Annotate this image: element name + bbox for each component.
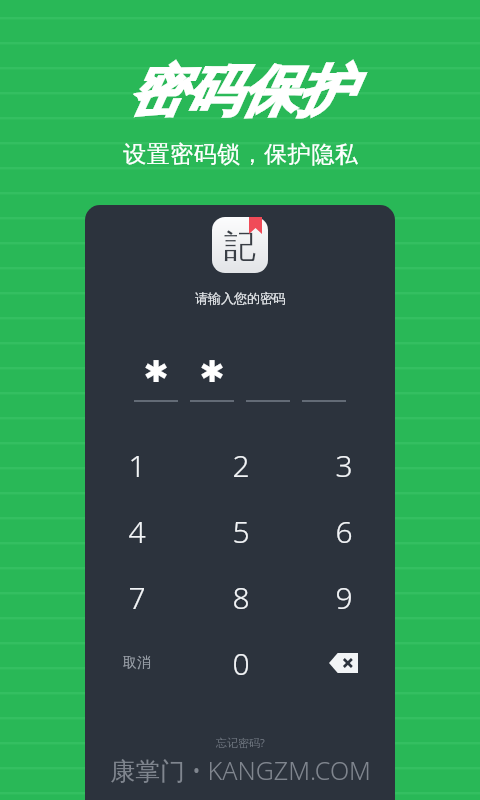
button[interactable]: 2	[189, 432, 292, 498]
staticText: 密码保护	[128, 57, 352, 126]
staticText: 3	[335, 445, 353, 486]
staticText: 6	[335, 511, 353, 552]
staticText: 2	[232, 445, 250, 486]
staticText: 4	[128, 511, 146, 552]
staticText: 忘记密码?	[216, 735, 265, 750]
button[interactable]: 1	[85, 432, 189, 498]
staticText: 设置密码锁，保护隐私	[123, 140, 358, 169]
staticText: 取消	[123, 654, 151, 672]
staticText: 康掌门 • KANGZM.COM	[110, 753, 371, 787]
button[interactable]: 3	[292, 432, 395, 498]
staticText: 0	[232, 643, 250, 684]
button[interactable]: 5	[189, 498, 292, 564]
button[interactable]: 取消	[85, 630, 189, 696]
staticText: 1	[128, 445, 146, 486]
button[interactable]: 9	[292, 564, 395, 630]
button[interactable]: 8	[189, 564, 292, 630]
button[interactable]: Backspace	[292, 630, 395, 696]
staticText: 記	[224, 226, 256, 266]
staticText: 9	[335, 577, 353, 618]
staticText: 请输入您的密码	[195, 290, 286, 306]
button[interactable]: 0	[189, 630, 292, 696]
staticText: ✱	[143, 354, 169, 389]
button[interactable]: 6	[292, 498, 395, 564]
button[interactable]: 忘记密码?	[204, 732, 277, 753]
staticText: 7	[128, 577, 146, 618]
staticText: ✱	[199, 354, 225, 389]
button[interactable]: 7	[85, 564, 189, 630]
button[interactable]: 4	[85, 498, 189, 564]
staticText: 5	[232, 511, 250, 552]
staticText: 8	[232, 577, 250, 618]
